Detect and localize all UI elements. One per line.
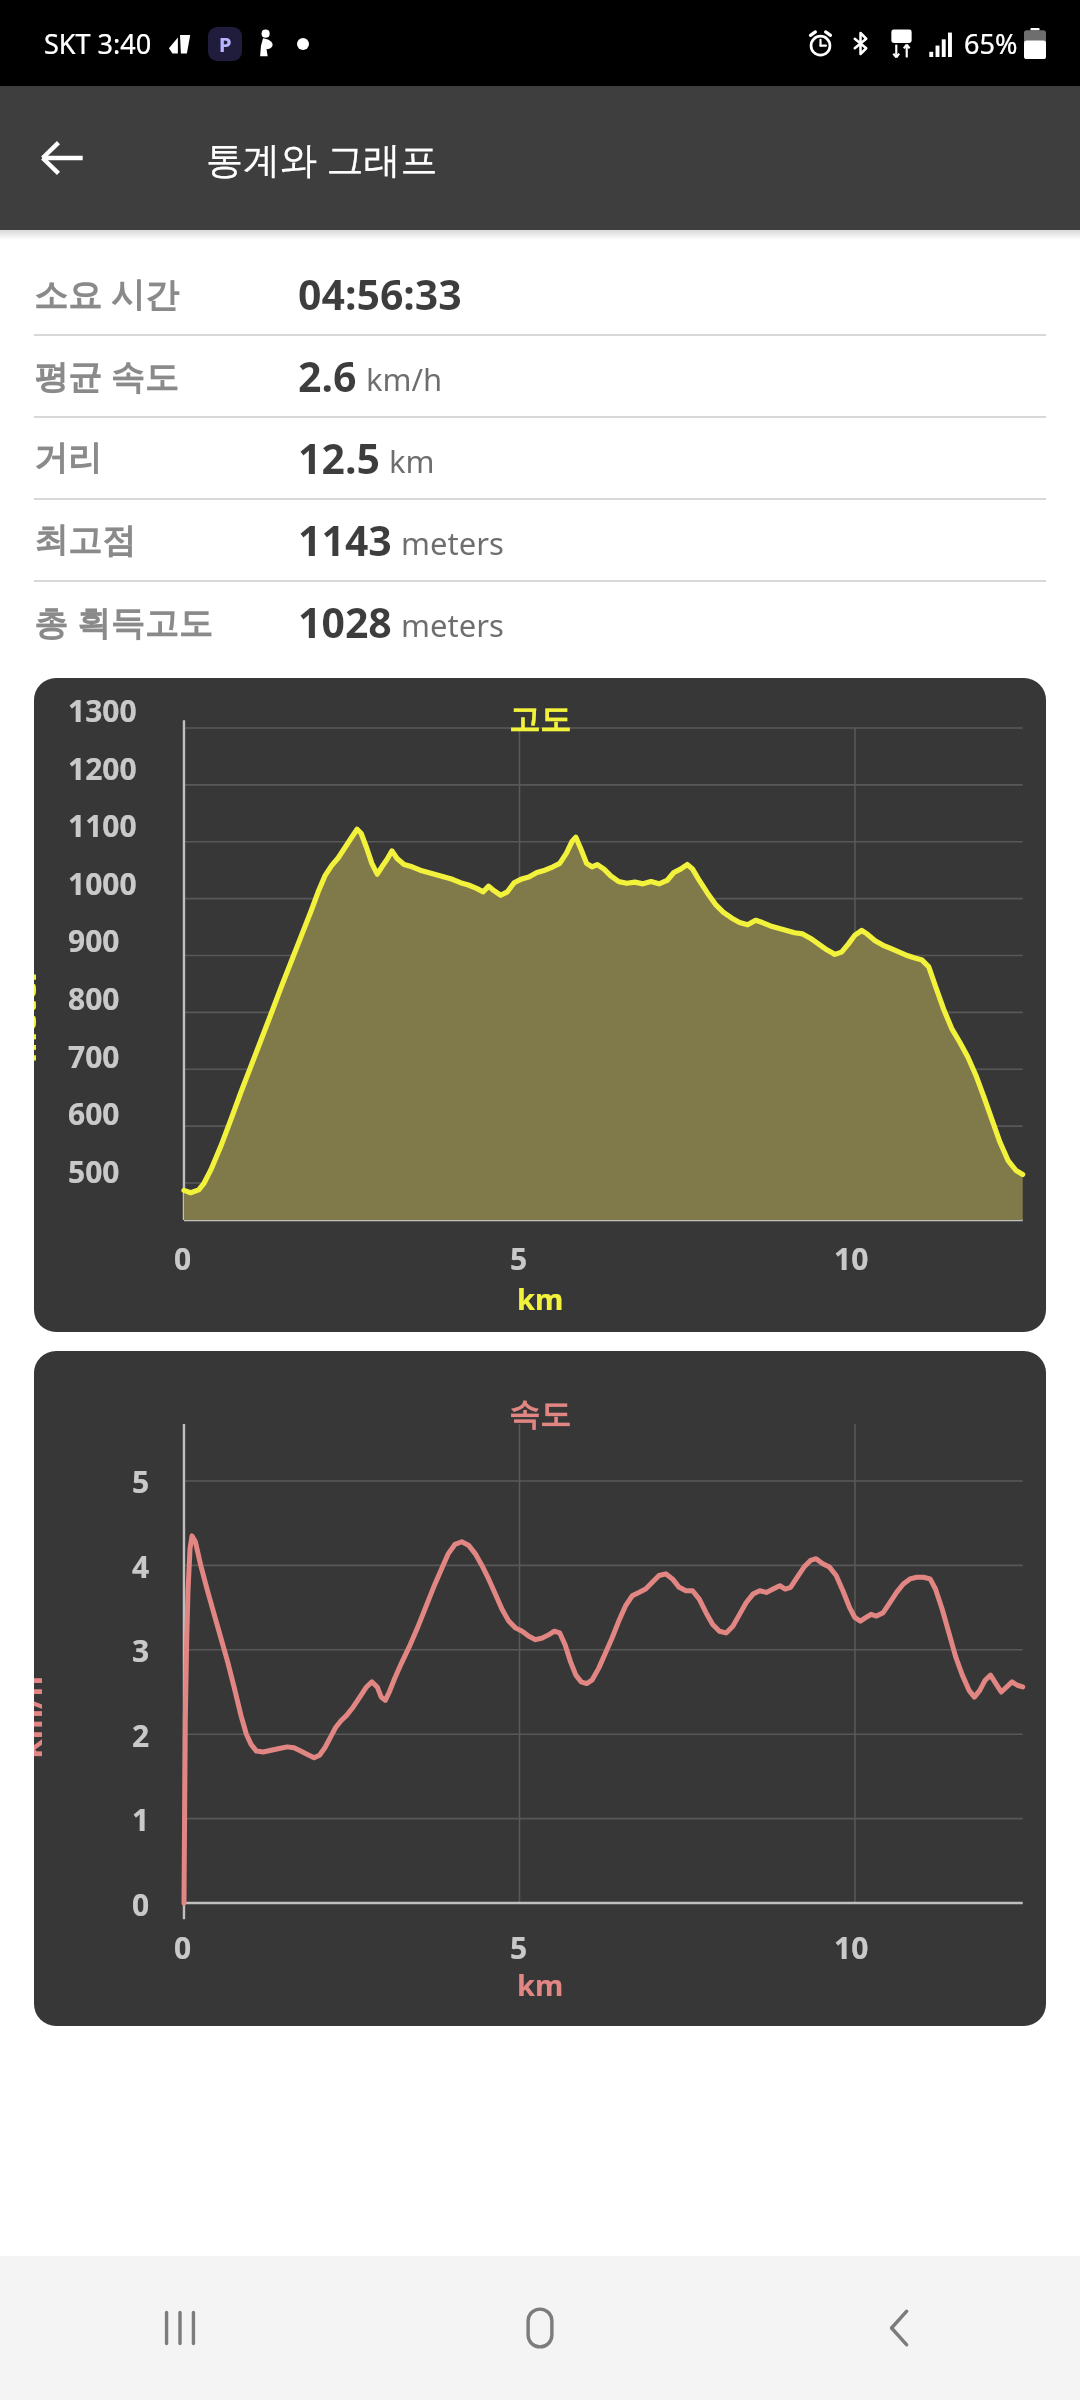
staticText: 1 — [132, 1799, 150, 1840]
staticText: km — [517, 1279, 564, 1318]
staticText: 1300 — [68, 690, 137, 731]
staticText: 12.5 — [298, 430, 380, 486]
staticText: 5 — [510, 1927, 528, 1968]
staticText: 65% — [964, 25, 1018, 62]
staticText: 900 — [68, 920, 120, 961]
staticText: 4 — [132, 1546, 150, 1587]
staticText: 10 — [834, 1238, 869, 1279]
staticText: 0 — [174, 1238, 192, 1279]
staticText: 총 획득고도 — [34, 599, 298, 645]
button[interactable]: Home — [360, 2256, 720, 2400]
staticText: SKT 3:40 — [44, 25, 152, 62]
staticText: 5 — [510, 1238, 528, 1279]
staticText: km/h — [366, 358, 443, 400]
staticText: 0 — [174, 1927, 192, 1968]
staticText: 04:56:33 — [298, 266, 462, 322]
staticText: 600 — [68, 1093, 120, 1134]
staticText: meters — [401, 604, 504, 646]
button[interactable]: 거리 — [34, 418, 1046, 498]
staticText: 거리 — [34, 437, 298, 480]
button[interactable]: 최고점 — [34, 500, 1046, 580]
staticText: 속도 — [509, 1395, 571, 1434]
staticText: 700 — [68, 1036, 120, 1077]
button[interactable]: 소요 시간 — [34, 254, 1046, 334]
button[interactable]: Back — [720, 2256, 1080, 2400]
button[interactable]: Back — [18, 114, 106, 202]
staticText: 5 — [132, 1461, 150, 1502]
button[interactable]: Recents — [0, 2256, 360, 2400]
staticText: 1143 — [298, 512, 392, 568]
staticText: 10 — [834, 1927, 869, 1968]
staticText: 최고점 — [34, 519, 298, 562]
button[interactable]: 5 — [34, 1351, 1046, 2026]
staticText: 통계와 그래프 — [206, 133, 438, 184]
staticText: km — [517, 1965, 564, 2004]
staticText: 고도 — [509, 700, 571, 739]
staticText: 2.6 — [298, 348, 357, 404]
staticText: P — [219, 31, 232, 58]
staticText: 500 — [68, 1151, 120, 1192]
staticText: meter — [34, 967, 44, 1062]
button[interactable]: 총 획득고도 — [34, 582, 1046, 662]
button[interactable]: 1300 — [34, 678, 1046, 1332]
staticText: km — [389, 440, 435, 482]
button[interactable]: 평균 속도 — [34, 336, 1046, 416]
staticText: 소요 시간 — [34, 271, 298, 317]
staticText: 1200 — [68, 748, 137, 789]
staticText: km/h — [34, 1675, 50, 1758]
staticText: 1000 — [68, 863, 137, 904]
staticText: meters — [401, 522, 504, 564]
staticText: 0 — [132, 1884, 150, 1925]
staticText: 3 — [132, 1630, 150, 1671]
staticText: 800 — [68, 978, 120, 1019]
staticText: 2 — [132, 1715, 150, 1756]
staticText: 1100 — [68, 805, 137, 846]
staticText: 1028 — [298, 594, 392, 650]
staticText: 평균 속도 — [34, 353, 298, 399]
